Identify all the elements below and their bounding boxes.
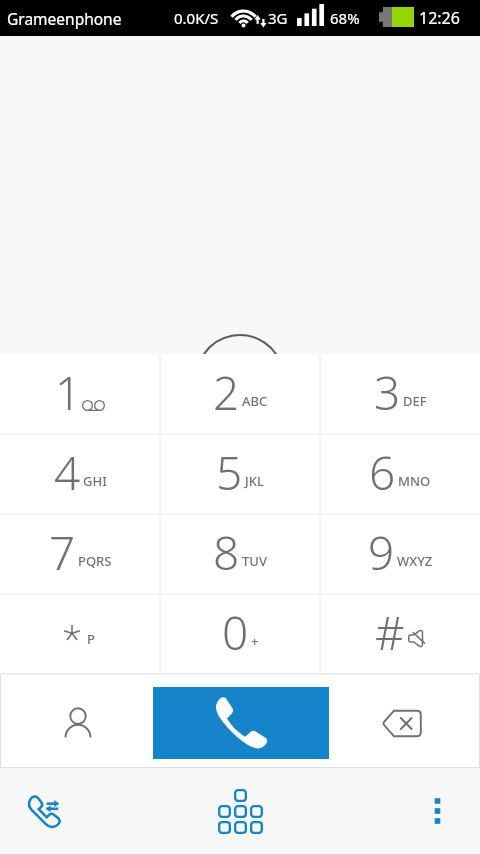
button[interactable]: More options [401,775,473,847]
staticText: Grameenphone [7,8,122,29]
button[interactable]: 4 [0,434,160,514]
staticText: # [375,601,405,664]
button[interactable]: 9 [320,514,480,594]
button[interactable]: # [320,594,480,674]
staticText: ABC [242,392,268,410]
staticText: TUV [242,552,267,570]
staticText: 3G [268,8,288,28]
button[interactable]: 7 [0,514,160,594]
staticText: 3 [374,361,401,424]
staticText: P [87,630,95,648]
staticText: 9 [368,521,395,584]
staticText: 12:26 [419,7,460,29]
staticText: WXYZ [397,552,433,570]
staticText: + [251,632,259,650]
button[interactable]: Backspace [362,687,442,759]
staticText: PQRS [78,552,112,570]
button[interactable]: Call [153,687,329,759]
button[interactable]: Keypad [202,775,278,847]
staticText: MNO [398,472,431,490]
button[interactable]: 1 [0,354,160,434]
staticText: 0 [222,601,249,664]
staticText: JKL [245,472,264,490]
button[interactable]: 0 [160,594,320,674]
button[interactable]: 6 [320,434,480,514]
staticText: 4 [54,441,81,504]
button[interactable]: 8 [160,514,320,594]
staticText: 68% [330,8,360,28]
button[interactable]: 2 [160,354,320,434]
staticText: 7 [49,521,76,584]
button[interactable]: 3 [320,354,480,434]
staticText: 8 [213,521,240,584]
staticText: DEF [403,392,427,410]
staticText: 0.0K/S [174,8,219,28]
button[interactable]: P [0,594,160,674]
staticText: 1 [55,361,82,424]
staticText: 6 [369,441,396,504]
button[interactable]: Recent calls [8,775,80,847]
button[interactable]: 5 [160,434,320,514]
staticText: 2 [213,361,240,424]
staticText: 5 [216,441,243,504]
staticText: GHI [83,472,107,490]
button[interactable]: Contacts [38,687,118,759]
